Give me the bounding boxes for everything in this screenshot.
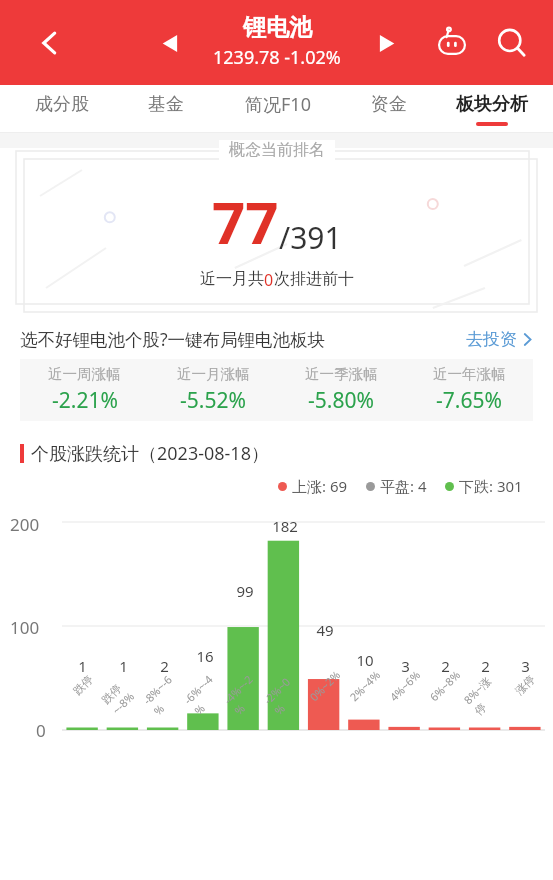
staticText: -4%~-2% bbox=[220, 668, 270, 718]
staticText: 8%~涨停 bbox=[460, 668, 510, 718]
staticText: 4%~6% bbox=[386, 667, 424, 704]
staticText: 成分股 bbox=[35, 93, 89, 116]
staticText: 跌停~-8% bbox=[99, 668, 148, 717]
staticText: -5.80% bbox=[308, 386, 374, 415]
staticText: 6%~8% bbox=[426, 667, 464, 704]
staticText: 概念当前排名 bbox=[229, 140, 325, 160]
staticText: 基金 bbox=[148, 93, 184, 116]
staticText: 3 bbox=[401, 656, 410, 676]
staticText: 0 bbox=[36, 719, 46, 742]
button[interactable]: 近一周涨幅 bbox=[20, 359, 533, 421]
staticText: 去投资 bbox=[466, 329, 517, 350]
staticText: 3 bbox=[521, 656, 530, 676]
staticText: 个股涨跌统计（2023-08-18） bbox=[31, 441, 269, 466]
staticText: 1 bbox=[119, 656, 128, 676]
staticText: 10 bbox=[356, 650, 374, 670]
button[interactable]: Search bbox=[489, 20, 535, 66]
staticText: -2.21% bbox=[52, 386, 118, 415]
staticText: 近一周涨幅 bbox=[48, 365, 121, 383]
staticText: 选不好锂电池个股?一键布局锂电池板块 bbox=[20, 327, 326, 351]
button[interactable]: 简况F10 bbox=[218, 85, 337, 133]
staticText: 近一月涨幅 bbox=[177, 365, 250, 383]
staticText: 2 bbox=[160, 656, 169, 676]
staticText: 近一月共 bbox=[200, 269, 264, 289]
button[interactable]: Next bbox=[366, 22, 408, 64]
staticText: 跌停 bbox=[70, 672, 96, 698]
button[interactable]: Previous bbox=[148, 22, 190, 64]
staticText: 上涨: 69 bbox=[292, 476, 348, 496]
button[interactable]: 资金 bbox=[337, 85, 440, 133]
button[interactable]: AI Assistant bbox=[429, 20, 475, 66]
staticText: 资金 bbox=[371, 93, 407, 116]
staticText: 1239.78 -1.02% bbox=[213, 45, 341, 70]
staticText: 简况F10 bbox=[245, 92, 311, 117]
staticText: 182 bbox=[272, 516, 298, 536]
staticText: 2 bbox=[481, 656, 490, 676]
staticText: 0 bbox=[264, 269, 274, 291]
staticText: 近一季涨幅 bbox=[305, 365, 378, 383]
staticText: -8%~-6% bbox=[139, 668, 190, 718]
staticText: 下跌: 301 bbox=[459, 476, 523, 496]
staticText: 49 bbox=[316, 620, 334, 640]
staticText: 次排进前十 bbox=[274, 269, 354, 289]
staticText: 16 bbox=[196, 646, 214, 666]
button[interactable]: 基金 bbox=[114, 85, 218, 133]
staticText: 2%~4% bbox=[346, 667, 384, 704]
staticText: 近一年涨幅 bbox=[433, 365, 506, 383]
staticText: -5.52% bbox=[180, 386, 246, 415]
staticText: 2 bbox=[441, 656, 450, 676]
staticText: 涨停 bbox=[512, 672, 538, 698]
staticText: 100 bbox=[10, 616, 40, 639]
button[interactable]: 成分股 bbox=[10, 85, 114, 133]
staticText: 99 bbox=[236, 581, 254, 601]
staticText: -6%~-4% bbox=[180, 668, 230, 718]
staticText: 平盘: 4 bbox=[380, 476, 427, 496]
staticText: 板块分析 bbox=[456, 93, 528, 116]
button[interactable]: 板块分析 bbox=[440, 85, 543, 133]
staticText: 1 bbox=[78, 656, 87, 676]
staticText: 0%~2% bbox=[306, 667, 344, 704]
staticText: -2%~0% bbox=[260, 668, 310, 718]
button[interactable]: Back bbox=[28, 21, 72, 65]
button[interactable]: 概念当前排名 bbox=[16, 148, 537, 313]
staticText: 200 bbox=[10, 513, 40, 536]
staticText: 锂电池 bbox=[243, 13, 312, 42]
staticText: -7.65% bbox=[436, 386, 502, 415]
staticText: /391 bbox=[279, 217, 342, 258]
button[interactable]: 选不好锂电池个股?一键布局锂电池板块 bbox=[20, 327, 533, 351]
staticText: 77 bbox=[212, 182, 279, 261]
